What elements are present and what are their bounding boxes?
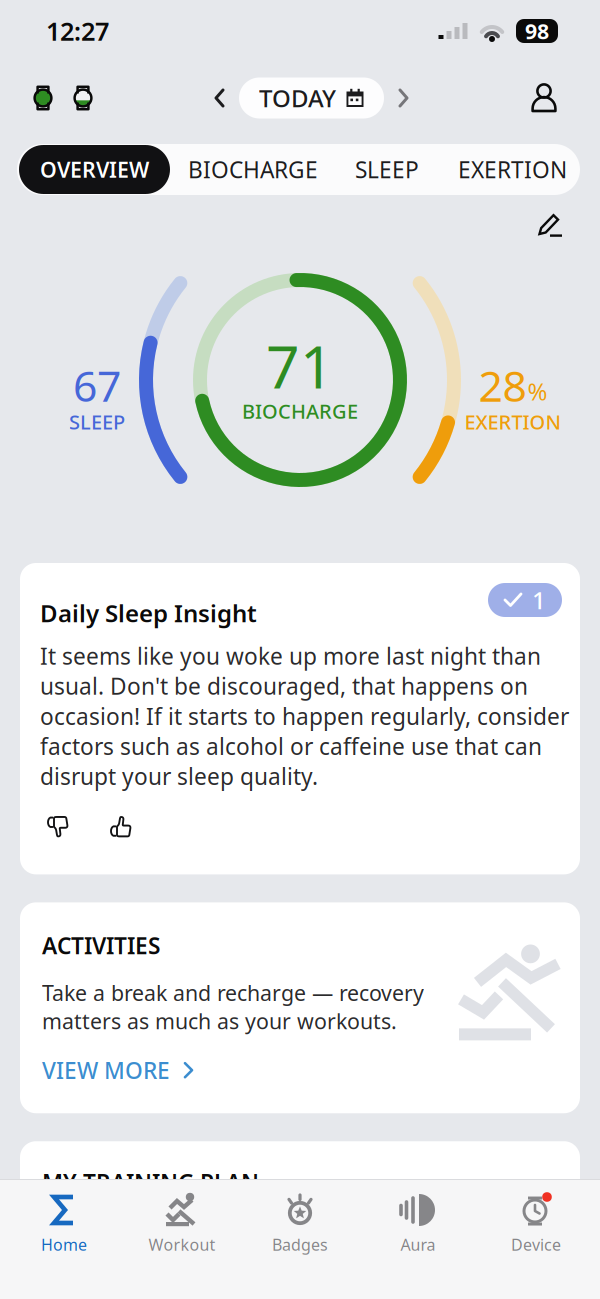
staticText: Device: [511, 1234, 561, 1255]
button[interactable]: Home: [5, 1192, 123, 1266]
button[interactable]: Workout: [123, 1192, 241, 1266]
staticText: It seems like you woke up more last nigh…: [40, 641, 569, 791]
staticText: TODAY: [259, 82, 336, 114]
staticText: SLEEP: [69, 409, 125, 435]
staticText: 1: [532, 584, 546, 616]
staticText: EXERTION: [458, 154, 567, 184]
button[interactable]: Not helpful: [41, 809, 78, 846]
staticText: BIOCHARGE: [242, 398, 358, 424]
staticText: BIOCHARGE: [188, 154, 318, 184]
staticText: 67: [73, 357, 121, 414]
button[interactable]: TODAY: [239, 77, 384, 118]
staticText: ACTIVITIES: [42, 930, 160, 960]
button[interactable]: Devices: [27, 78, 99, 118]
staticText: Home: [41, 1234, 87, 1255]
button[interactable]: Profile: [524, 76, 564, 120]
button[interactable]: VIEW MORE: [42, 1049, 558, 1091]
button[interactable]: Previous day: [203, 78, 239, 118]
staticText: Aura: [400, 1234, 435, 1255]
button[interactable]: EXERTION: [440, 145, 579, 194]
button[interactable]: OVERVIEW: [19, 145, 170, 194]
staticText: OVERVIEW: [40, 155, 149, 184]
button[interactable]: 1: [488, 583, 562, 617]
button[interactable]: Next day: [384, 78, 420, 118]
staticText: Take a break and recharge — recovery mat…: [42, 978, 424, 1035]
staticText: EXERTION: [464, 409, 561, 435]
button[interactable]: Edit: [530, 205, 572, 246]
button[interactable]: Badges: [241, 1192, 359, 1266]
staticText: 71: [266, 327, 334, 405]
button[interactable]: Helpful: [104, 809, 141, 846]
staticText: SLEEP: [355, 154, 419, 184]
button[interactable]: BIOCHARGE: [170, 145, 338, 194]
staticText: Workout: [148, 1234, 215, 1255]
staticText: %: [527, 375, 547, 407]
staticText: Daily Sleep Insight: [40, 597, 257, 629]
button[interactable]: SLEEP: [338, 145, 440, 194]
staticText: 12:27: [46, 14, 109, 48]
staticText: VIEW MORE: [42, 1055, 170, 1085]
button[interactable]: Aura: [359, 1192, 477, 1266]
button[interactable]: Device: [477, 1192, 595, 1266]
staticText: 28: [478, 357, 526, 414]
staticText: Badges: [272, 1234, 328, 1255]
staticText: 98: [525, 17, 549, 45]
staticText: MY TRAINING PLAN: [42, 1167, 259, 1197]
